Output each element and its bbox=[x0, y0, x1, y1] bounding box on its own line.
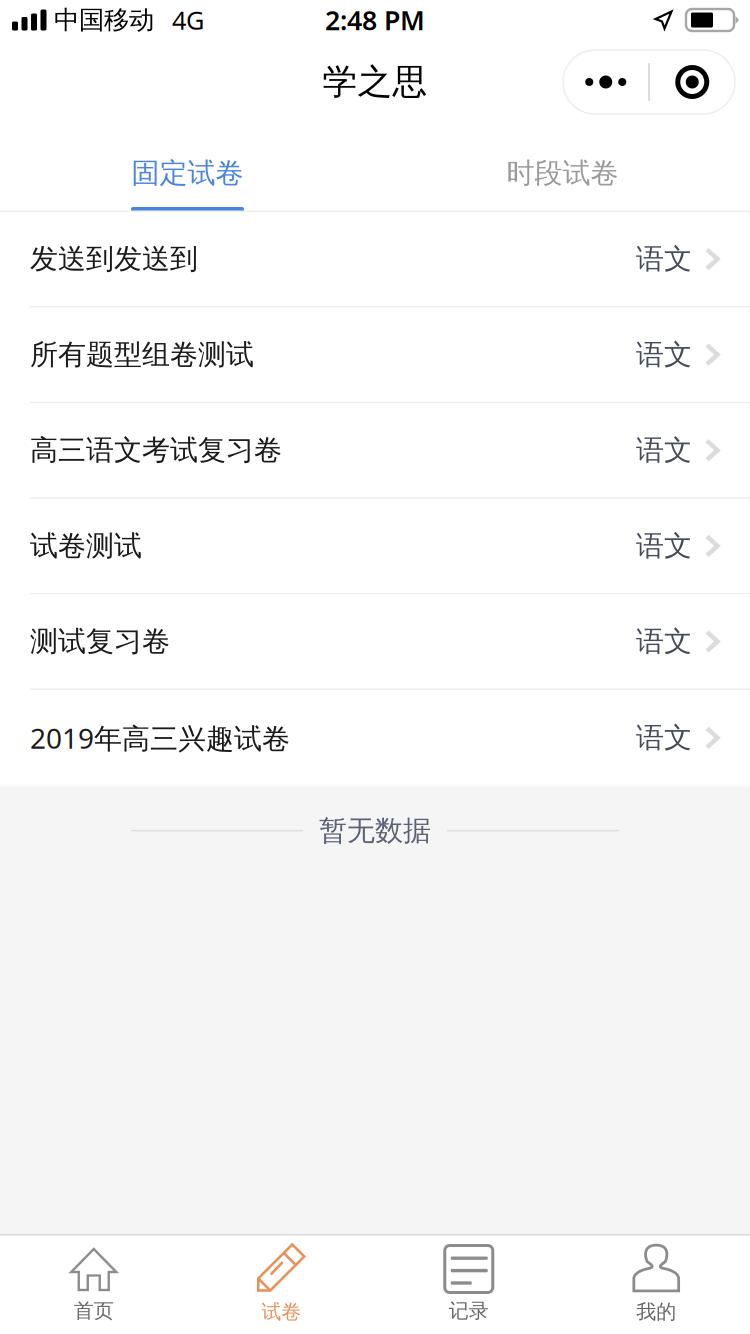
button[interactable]: Close bbox=[650, 50, 735, 114]
button[interactable]: 固定试卷 bbox=[0, 124, 375, 212]
staticText: 语文 bbox=[636, 721, 692, 755]
staticText: 语文 bbox=[636, 433, 692, 467]
staticText: 语文 bbox=[636, 242, 692, 276]
button[interactable]: 试卷测试 bbox=[0, 499, 750, 594]
staticText: 语文 bbox=[636, 624, 692, 659]
button[interactable]: 首页 bbox=[0, 1235, 187, 1334]
staticText: 所有题型组卷测试 bbox=[30, 337, 254, 372]
staticText: 学之思 bbox=[322, 61, 427, 103]
button[interactable]: 时段试卷 bbox=[375, 124, 750, 212]
staticText: 试卷测试 bbox=[30, 529, 142, 563]
button[interactable]: 高三语文考试复习卷 bbox=[0, 403, 750, 499]
staticText: 我的 bbox=[636, 1299, 676, 1324]
staticText: 语文 bbox=[636, 337, 692, 372]
staticText: 试卷 bbox=[261, 1299, 301, 1324]
button[interactable]: More bbox=[563, 50, 648, 114]
staticText: 2019年高三兴趣试卷 bbox=[30, 719, 290, 756]
staticText: 固定试卷 bbox=[131, 156, 243, 190]
staticText: 发送到发送到 bbox=[30, 242, 198, 276]
staticText: 中国移动 bbox=[54, 4, 154, 35]
button[interactable]: 发送到发送到 bbox=[0, 212, 750, 308]
button[interactable]: 我的 bbox=[562, 1235, 750, 1334]
staticText: 高三语文考试复习卷 bbox=[30, 433, 282, 467]
button[interactable]: 试卷 bbox=[187, 1235, 375, 1334]
button[interactable]: 测试复习卷 bbox=[0, 594, 750, 690]
button[interactable]: 2019年高三兴趣试卷 bbox=[0, 690, 750, 786]
staticText: 时段试卷 bbox=[506, 156, 618, 190]
staticText: 首页 bbox=[74, 1298, 114, 1323]
staticText: 测试复习卷 bbox=[30, 624, 170, 659]
staticText: 记录 bbox=[449, 1298, 489, 1323]
staticText: 2:48 PM bbox=[325, 2, 425, 38]
staticText: 4G bbox=[172, 3, 204, 37]
button[interactable]: 所有题型组卷测试 bbox=[0, 308, 750, 403]
button[interactable]: 记录 bbox=[375, 1235, 562, 1334]
staticText: 语文 bbox=[636, 529, 692, 563]
staticText: 暂无数据 bbox=[319, 813, 431, 848]
